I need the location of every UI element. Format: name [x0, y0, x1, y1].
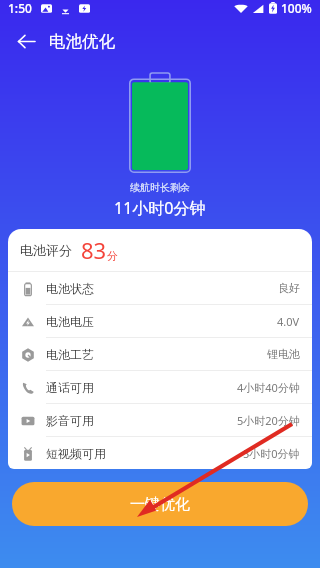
staticText: 通话可用 — [46, 380, 94, 395]
staticText: 5小时20分钟 — [237, 413, 300, 428]
button[interactable]: 一键优化 — [12, 482, 308, 526]
staticText: 5小时0分钟 — [243, 446, 300, 461]
staticText: 83 — [81, 235, 107, 265]
staticText: 电池状态 — [46, 281, 94, 296]
staticText: 影音可用 — [46, 413, 94, 428]
staticText: 100% — [281, 0, 312, 16]
button[interactable]: 电池电压 — [8, 305, 312, 338]
staticText: 电池电压 — [46, 314, 94, 329]
staticText: 4.0V — [277, 314, 300, 329]
staticText: 良好 — [278, 281, 300, 295]
staticText: 11小时0分钟 — [114, 197, 206, 219]
staticText: 电池评分 — [20, 242, 72, 258]
button[interactable]: 通话可用 — [8, 371, 312, 404]
button[interactable]: 短视频可用 — [8, 437, 312, 469]
staticText: 电池工艺 — [46, 347, 94, 362]
staticText: 分 — [107, 249, 118, 263]
button[interactable]: 影音可用 — [8, 404, 312, 437]
staticText: 4小时40分钟 — [237, 380, 300, 395]
button[interactable]: 电池工艺 — [8, 338, 312, 371]
staticText: 锂电池 — [267, 347, 300, 361]
staticText: 短视频可用 — [46, 446, 106, 461]
staticText: 一键优化 — [130, 495, 190, 514]
staticText: 1:50 — [8, 0, 32, 16]
button[interactable]: 电池状态 — [8, 272, 312, 305]
button[interactable]: Back — [10, 25, 42, 57]
staticText: 电池优化 — [49, 31, 115, 52]
staticText: 续航时长剩余 — [130, 181, 190, 194]
